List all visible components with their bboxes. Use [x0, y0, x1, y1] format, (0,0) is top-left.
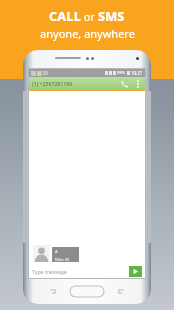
button[interactable]: Send [129, 266, 142, 277]
staticText: SMS [98, 8, 125, 25]
staticText: (1) +2567281190 [32, 80, 73, 87]
button[interactable]: Call [119, 78, 131, 90]
staticText: 10:27 [131, 70, 143, 76]
staticText: or [81, 9, 98, 24]
staticText: 50m [55, 257, 64, 262]
staticText: anyone, anywhere [40, 26, 135, 41]
staticText: Type message [32, 268, 67, 275]
button[interactable]: Type message [32, 264, 127, 278]
button[interactable]: A [52, 247, 79, 262]
staticText: CALL [49, 8, 81, 25]
staticText: 98% [117, 70, 126, 76]
staticText: A [55, 249, 58, 255]
button[interactable]: More options [133, 77, 142, 90]
